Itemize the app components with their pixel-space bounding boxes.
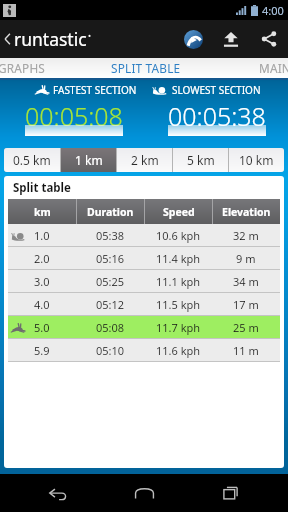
button[interactable]: Home xyxy=(116,474,172,512)
staticText: 5 km xyxy=(187,152,215,168)
staticText: 0.5 km xyxy=(13,152,51,168)
staticText: 25 m xyxy=(233,320,259,335)
staticText: 11.6 kph xyxy=(156,343,201,358)
staticText: 2.0 xyxy=(34,251,50,266)
staticText: MAIN xyxy=(259,60,288,76)
staticText: 9 m xyxy=(236,251,256,266)
button[interactable]: MAIN xyxy=(204,58,288,78)
button[interactable]: 4.0 xyxy=(8,293,280,316)
staticText: 11 m xyxy=(233,343,259,358)
staticText: 11.1 kph xyxy=(156,274,201,289)
staticText: Elevation xyxy=(222,205,271,219)
button[interactable]: runtastic xyxy=(0,23,97,55)
staticText: 5.9 xyxy=(34,343,50,358)
button[interactable]: Upload xyxy=(212,20,250,58)
staticText: 05:16 xyxy=(96,251,125,266)
button[interactable]: 0.5 km xyxy=(4,148,60,172)
staticText: 1.0 xyxy=(34,228,50,243)
staticText: 00:05:38 xyxy=(168,99,266,133)
staticText: 11.5 kph xyxy=(156,297,201,312)
staticText: 10 km xyxy=(239,152,274,168)
staticText: runtastic xyxy=(14,27,87,51)
staticText: 10.6 kph xyxy=(156,228,201,243)
button[interactable]: 5.0 xyxy=(8,316,280,339)
staticText: FASTEST SECTION xyxy=(53,83,137,97)
staticText: 05:38 xyxy=(96,228,125,243)
staticText: 17 m xyxy=(233,297,259,312)
staticText: 4:00 xyxy=(262,3,284,18)
staticText: 4.0 xyxy=(34,297,50,312)
staticText: 5.0 xyxy=(34,320,50,335)
staticText: Split table xyxy=(13,180,71,196)
staticText: SLOWEST SECTION xyxy=(172,83,261,97)
button[interactable]: 10 km xyxy=(229,148,284,172)
staticText: 05:25 xyxy=(96,274,125,289)
staticText: 00:05:08 xyxy=(25,99,123,133)
staticText: SPLIT TABLE xyxy=(111,60,181,76)
staticText: 2 km xyxy=(131,152,159,168)
button[interactable]: Share xyxy=(250,20,288,58)
button[interactable]: Runtastic xyxy=(174,20,212,58)
staticText: 05:08 xyxy=(96,320,125,335)
staticText: GRAPHS xyxy=(0,60,46,76)
button[interactable]: 2.0 xyxy=(8,247,280,270)
button[interactable]: GRAPHS xyxy=(0,58,93,78)
button[interactable]: Back xyxy=(30,474,86,512)
staticText: 32 m xyxy=(233,228,259,243)
staticText: 3.0 xyxy=(34,274,50,289)
staticText: km xyxy=(34,205,51,219)
staticText: 11.7 kph xyxy=(156,320,201,335)
button[interactable]: 3.0 xyxy=(8,270,280,293)
button[interactable]: 1 km xyxy=(61,148,116,172)
button[interactable]: 2 km xyxy=(117,148,172,172)
button[interactable]: 1.0 xyxy=(8,224,280,247)
staticText: 05:12 xyxy=(96,297,125,312)
staticText: Duration xyxy=(87,205,134,219)
staticText: 05:10 xyxy=(96,343,125,358)
staticText: 1 km xyxy=(75,152,103,168)
staticText: Speed xyxy=(163,205,195,219)
staticText: 34 m xyxy=(233,274,259,289)
button[interactable]: 5.9 xyxy=(8,339,280,362)
staticText: 11.4 kph xyxy=(156,251,201,266)
button[interactable]: 5 km xyxy=(173,148,228,172)
button[interactable]: Recents xyxy=(202,474,258,512)
button[interactable]: SPLIT TABLE xyxy=(74,58,217,78)
